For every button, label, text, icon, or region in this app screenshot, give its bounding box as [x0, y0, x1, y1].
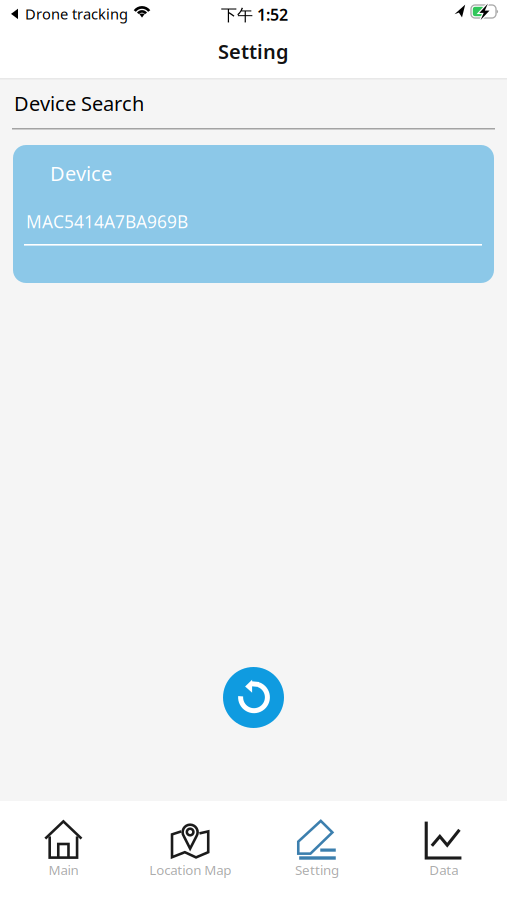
staticText: Location Map — [149, 861, 231, 879]
staticText: Data — [429, 861, 458, 879]
staticText: Device — [50, 160, 112, 187]
button[interactable]: Main — [0, 801, 127, 900]
button[interactable]: Refresh — [223, 667, 284, 728]
staticText: Setting — [218, 38, 289, 65]
staticText: Drone tracking — [25, 4, 128, 23]
staticText: Main — [48, 861, 78, 879]
staticText: Setting — [295, 861, 339, 879]
button[interactable]: Location Map — [127, 801, 254, 900]
staticText: Device Search — [14, 90, 144, 117]
staticText: 下午 1:52 — [221, 4, 288, 25]
button[interactable]: Setting — [253, 801, 380, 900]
staticText: MAC5414A7BA969B — [26, 210, 188, 233]
button[interactable]: Data — [380, 801, 507, 900]
